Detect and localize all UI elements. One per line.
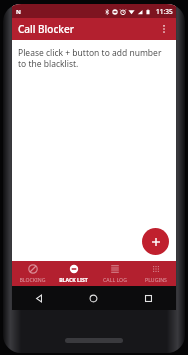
button[interactable]: PLUGINS (135, 261, 176, 286)
button[interactable]: More options (156, 21, 172, 37)
button[interactable]: Home (66, 286, 121, 310)
button[interactable]: CALL LOG (94, 261, 135, 286)
button[interactable]: BLACK LIST (53, 261, 94, 286)
button[interactable]: Recent apps (121, 286, 176, 310)
button[interactable]: Add number (142, 228, 169, 255)
staticText: 11:35 (156, 7, 173, 16)
staticText: N (16, 8, 21, 15)
staticText: BLACK LIST (59, 276, 88, 283)
staticText: Call Blocker (18, 22, 74, 36)
staticText: PLUGINS (145, 276, 167, 283)
staticText: Please click + button to add number to t… (18, 47, 168, 69)
button[interactable]: BLOCKING (12, 261, 53, 286)
staticText: BLOCKING (19, 276, 46, 283)
staticText: CALL LOG (103, 276, 127, 283)
button[interactable]: Back (12, 286, 66, 310)
